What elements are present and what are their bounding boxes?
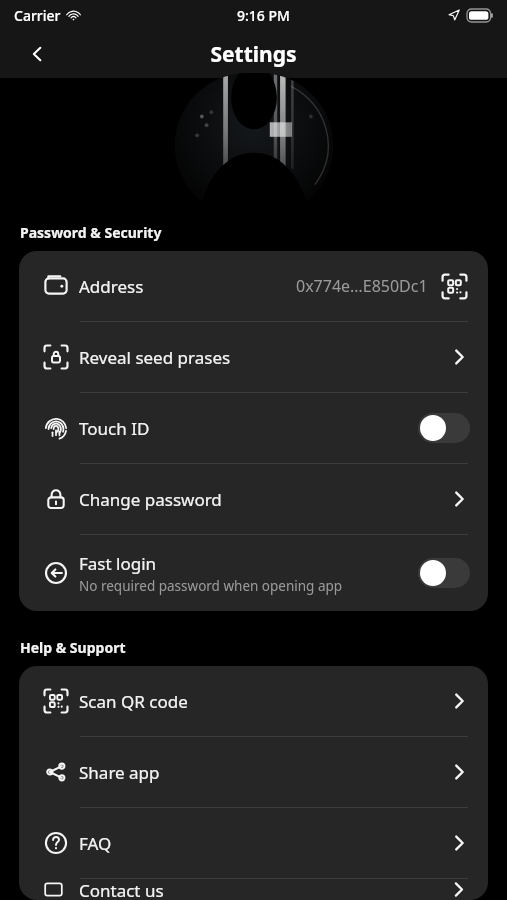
button[interactable] [418, 558, 470, 588]
button[interactable] [418, 413, 470, 443]
button[interactable]: Address [19, 251, 488, 321]
button[interactable]: Back [16, 33, 58, 75]
staticText: Carrier [14, 6, 61, 25]
staticText: Settings [210, 40, 297, 69]
staticText: 0x774e…E850Dc1 [296, 275, 428, 297]
staticText: Share app [79, 761, 160, 784]
button[interactable]: Scan QR code [19, 666, 488, 736]
button[interactable]: Change password [19, 464, 488, 534]
staticText: Address [79, 275, 144, 298]
staticText: 9:16 PM [237, 6, 290, 25]
button[interactable]: Show QR code [438, 270, 470, 302]
staticText: Help & Support [20, 638, 126, 657]
staticText: Touch ID [79, 417, 150, 440]
staticText: FAQ [79, 832, 112, 855]
staticText: Fast login [79, 552, 157, 575]
button[interactable]: Reveal seed prases [19, 322, 488, 392]
staticText: Contact us [79, 879, 164, 900]
button[interactable]: FAQ [19, 808, 488, 878]
staticText: Change password [79, 488, 222, 511]
button[interactable]: Touch ID [19, 393, 488, 463]
button[interactable]: Contact us [19, 879, 488, 900]
staticText: No required password when opening app [79, 577, 343, 595]
button[interactable]: Fast login [19, 535, 488, 611]
staticText: Password & Security [20, 223, 162, 242]
staticText: Scan QR code [79, 690, 188, 713]
button[interactable]: Share app [19, 737, 488, 807]
button[interactable]: Profile photo [175, 73, 333, 218]
staticText: Reveal seed prases [79, 346, 231, 369]
